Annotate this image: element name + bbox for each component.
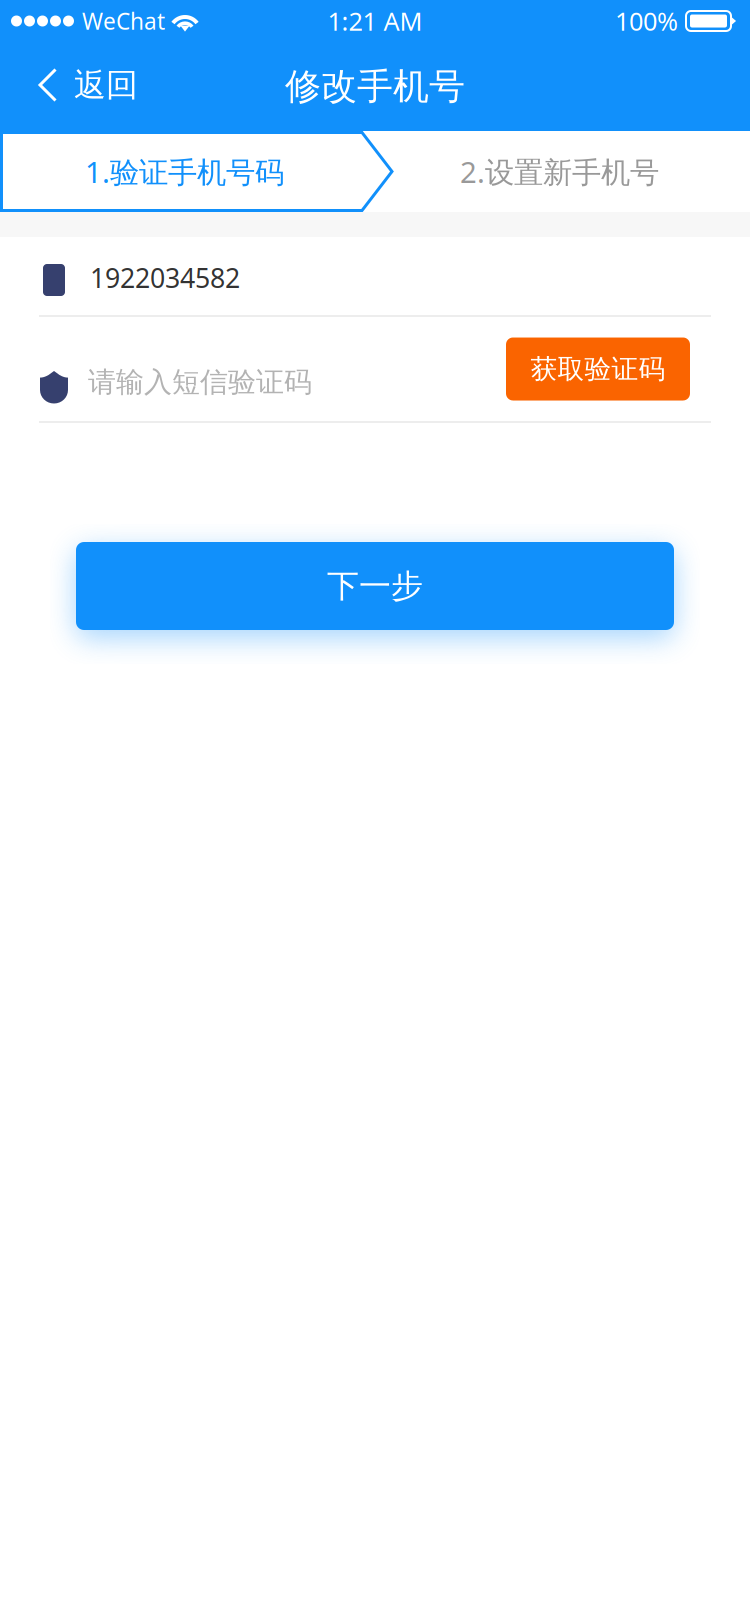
staticText: 2.设置新手机号 [460,152,659,191]
staticText: 1:21 AM [327,4,422,38]
button[interactable]: 下一步 [76,542,674,630]
staticText: 下一步 [327,566,423,606]
button[interactable]: 2.设置新手机号 [369,131,750,212]
button[interactable]: 1.验证手机号码 [0,131,369,212]
staticText: 修改手机号 [285,64,465,109]
staticText: 返回 [74,65,138,105]
staticText: 1.验证手机号码 [85,152,284,191]
staticText: 100% [615,4,678,38]
staticText: 1922034582 [90,260,240,295]
button[interactable]: 返回 [0,48,162,131]
staticText: 获取验证码 [530,353,665,385]
staticText: WeChat [82,6,165,36]
staticText: 请输入短信验证码 [88,365,312,399]
button[interactable]: 获取验证码 [506,337,690,400]
